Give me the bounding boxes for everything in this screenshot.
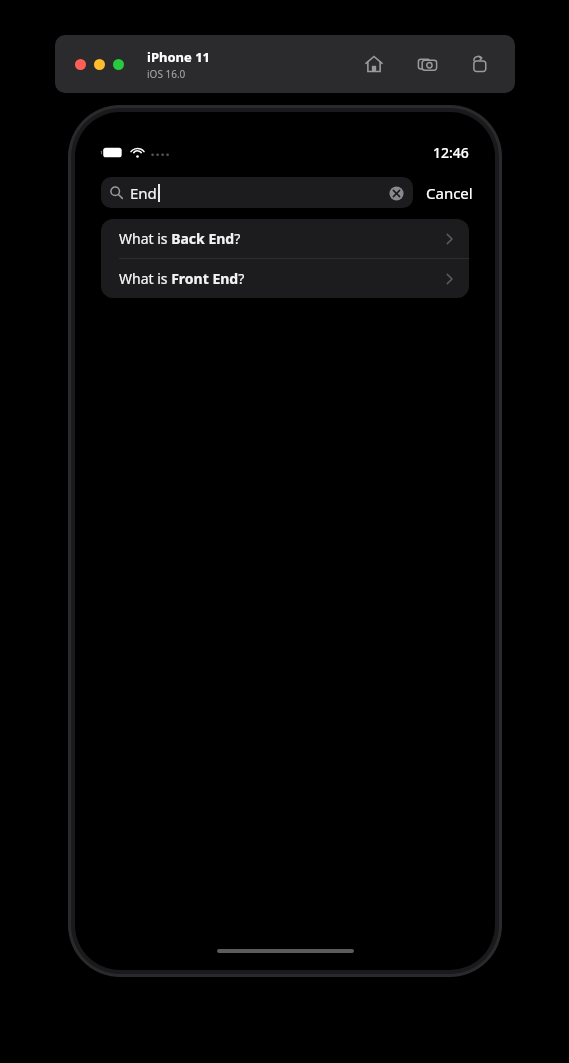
staticText: What is Front End? bbox=[119, 269, 245, 288]
staticText: iPhone 11 bbox=[147, 48, 210, 66]
staticText: End bbox=[130, 183, 157, 203]
button[interactable]: Cancel bbox=[426, 183, 473, 203]
staticText: What is Back End? bbox=[119, 229, 241, 248]
button[interactable]: Home bbox=[361, 51, 387, 77]
button[interactable]: Maximize bbox=[113, 59, 124, 70]
button[interactable]: End bbox=[101, 177, 413, 208]
button[interactable]: Clear text bbox=[388, 185, 404, 201]
staticText: iOS 16.0 bbox=[147, 67, 186, 81]
button[interactable]: Close bbox=[75, 59, 86, 70]
button[interactable]: What is Front End? bbox=[101, 259, 469, 298]
staticText: Cancel bbox=[426, 183, 473, 203]
button[interactable]: Rotate bbox=[467, 51, 493, 77]
button[interactable]: Minimize bbox=[94, 59, 105, 70]
button[interactable]: Screenshot bbox=[414, 51, 440, 77]
staticText: 12:46 bbox=[433, 143, 469, 162]
button[interactable]: What is Back End? bbox=[101, 219, 469, 258]
